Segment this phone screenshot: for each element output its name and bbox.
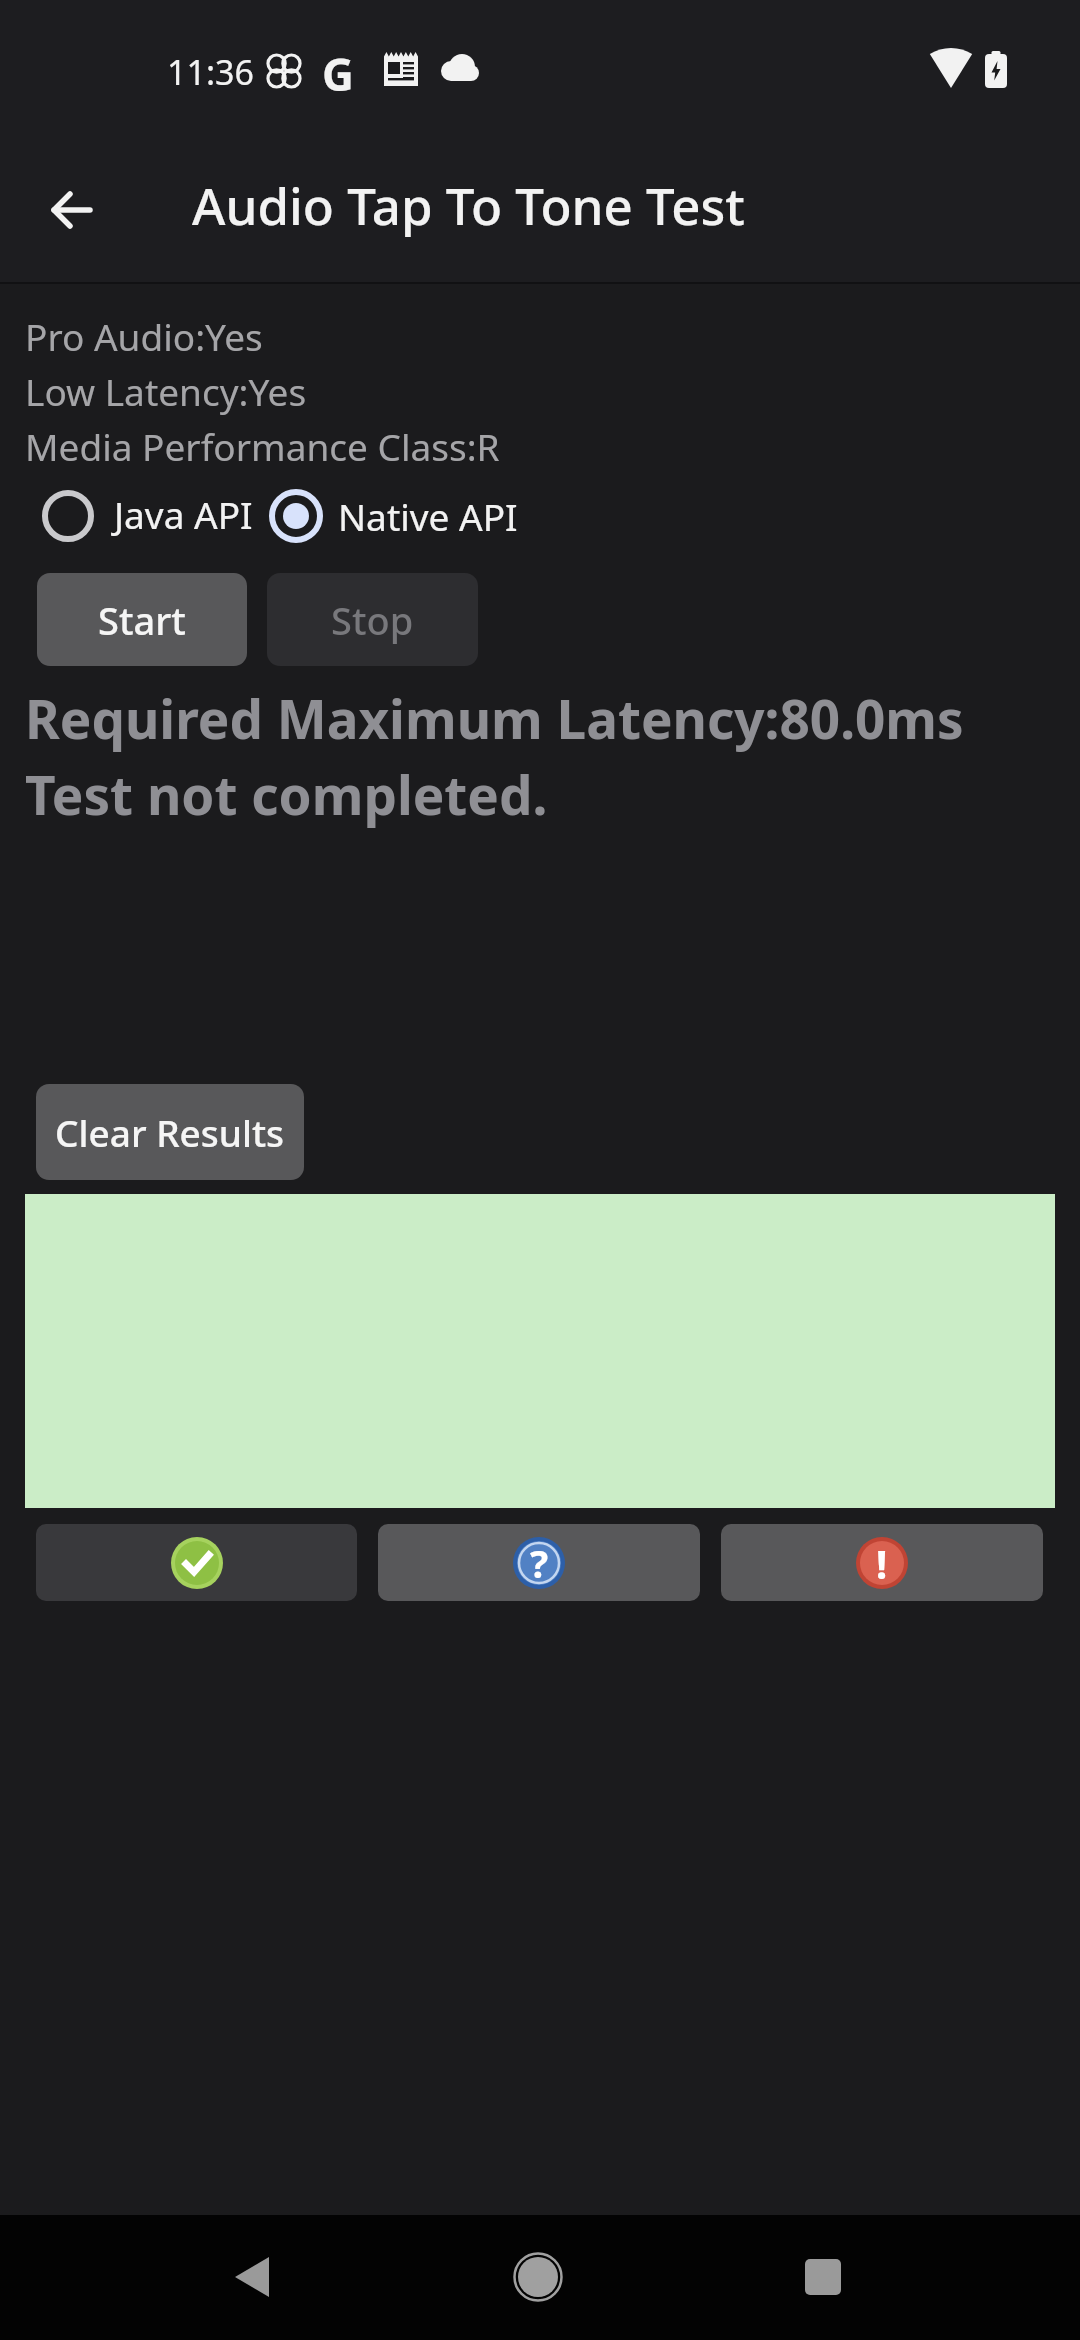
staticText: ! [876, 1536, 888, 1590]
staticText: ? [530, 1537, 549, 1589]
button[interactable] [488, 2227, 588, 2327]
button[interactable]: Java API [40, 486, 253, 542]
staticText: Clear Results [55, 1107, 285, 1157]
button[interactable]: Clear Results [36, 1084, 304, 1180]
button[interactable]: ! [721, 1524, 1043, 1601]
staticText: Pro Audio:Yes [25, 311, 263, 361]
button[interactable]: Start [37, 573, 247, 666]
button[interactable]: ? [378, 1524, 700, 1601]
staticText: Audio Tap To Tone Test [192, 170, 745, 239]
button[interactable] [36, 1524, 357, 1601]
button[interactable] [203, 2227, 303, 2327]
staticText: Stop [331, 594, 414, 646]
button[interactable]: Native API [266, 486, 518, 546]
staticText: Java API [114, 489, 253, 539]
staticText: Native API [338, 491, 518, 541]
button[interactable]: Stop [267, 573, 478, 666]
staticText: Start [98, 594, 186, 646]
staticText: 11:36 [167, 49, 254, 95]
staticText: Required Maximum Latency:80.0ms [25, 682, 964, 754]
button[interactable] [40, 178, 104, 242]
staticText: G [322, 44, 354, 104]
staticText: Low Latency:Yes [25, 366, 307, 416]
staticText: Media Performance Class:R [25, 421, 500, 471]
staticText: Test not completed. [25, 758, 548, 830]
button[interactable] [773, 2227, 873, 2327]
